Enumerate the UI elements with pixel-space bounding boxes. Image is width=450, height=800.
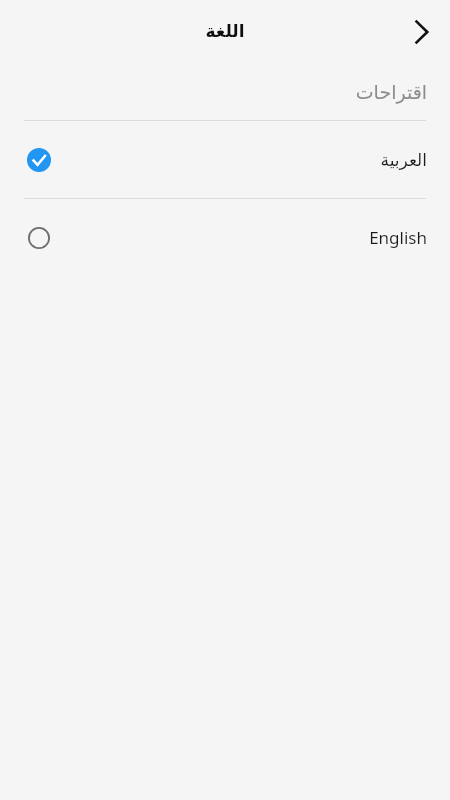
staticText: العربية [380,150,427,170]
button[interactable]: Forward [398,10,442,54]
staticText: اقتراحات [355,81,427,103]
staticText: اللغة [205,21,245,41]
button[interactable]: العربية [0,121,450,198]
staticText: English [369,226,427,249]
button[interactable]: English [0,199,450,276]
